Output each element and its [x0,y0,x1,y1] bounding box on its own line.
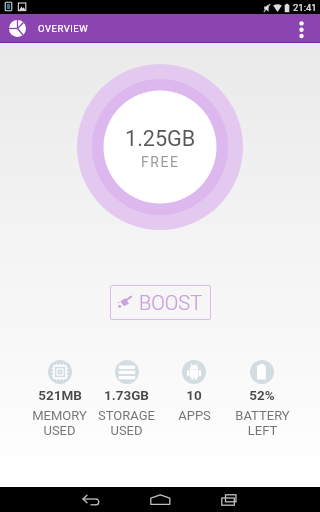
staticText: BOOST [139,291,203,314]
staticText: MEMORY USED [32,408,87,438]
button[interactable]: App icon [9,20,26,37]
button[interactable]: Home [136,487,184,512]
staticText: 21:41 [293,2,317,13]
button[interactable]: 1.73GB [93,360,160,438]
staticText: OVERVIEW [38,23,89,34]
button[interactable]: BOOST [110,285,211,320]
staticText: 10 [186,387,202,403]
staticText: 1.73GB [104,387,149,403]
staticText: 521MB [38,387,82,403]
button[interactable]: Back [67,487,115,512]
button[interactable]: Recent apps [205,487,253,512]
button[interactable]: 52% [228,360,296,438]
staticText: 1.25GB [125,126,196,151]
button[interactable]: 521MB [26,360,93,438]
button[interactable]: 10 [160,360,228,423]
staticText: APPS [178,408,211,423]
staticText: 52% [249,387,275,403]
staticText: STORAGE USED [98,408,155,438]
button[interactable]: More options [285,14,317,42]
staticText: BATTERY LEFT [235,408,290,438]
staticText: FREE [141,154,180,170]
